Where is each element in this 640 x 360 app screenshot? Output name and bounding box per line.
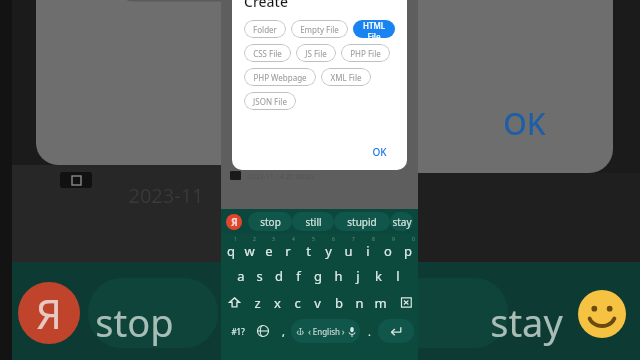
button[interactable]: HTML File (353, 20, 395, 38)
staticText: 9 (392, 236, 395, 243)
button[interactable]: j (348, 262, 368, 289)
button[interactable]: Shift (221, 289, 247, 316)
button[interactable]: still (292, 212, 334, 231)
staticText: a (237, 267, 245, 285)
staticText: d (275, 267, 283, 285)
button[interactable]: Backspace (391, 289, 418, 316)
staticText: 7 (352, 236, 355, 243)
button[interactable]: JS File (296, 44, 336, 62)
staticText: Create (244, 0, 288, 11)
staticText: HTML File (362, 20, 386, 38)
button[interactable]: x (267, 289, 287, 316)
staticText: 0 (412, 236, 415, 243)
staticText: XML File (330, 72, 362, 83)
button[interactable]: l (388, 262, 408, 289)
staticText: Я (231, 215, 238, 229)
button[interactable]: s (250, 262, 269, 289)
button[interactable]: OK (364, 140, 395, 164)
staticText: OK (503, 103, 546, 144)
staticText: ‹I› ‹ English › (296, 326, 345, 337)
button[interactable]: JSON File (244, 92, 296, 110)
button[interactable]: 1 (221, 236, 240, 262)
staticText: i (366, 242, 370, 260)
staticText: u (344, 242, 353, 260)
staticText: o (384, 242, 392, 260)
staticText: n (355, 294, 364, 312)
button[interactable]: 5 (298, 236, 318, 262)
staticText: e (265, 242, 273, 260)
staticText: 2023-11 (128, 182, 204, 209)
staticText: JS File (305, 48, 327, 59)
button[interactable]: PHP File (341, 44, 390, 62)
button[interactable]: stop (248, 212, 292, 231)
button[interactable]: m (370, 289, 391, 316)
button[interactable]: 7 (338, 236, 358, 262)
button[interactable]: a (231, 262, 250, 289)
button[interactable]: f (288, 262, 308, 289)
staticText: b (335, 294, 343, 312)
staticText: p (404, 242, 412, 260)
button[interactable]: Yandex assistant (226, 214, 242, 230)
button[interactable]: stupid (334, 212, 390, 231)
staticText: x (274, 294, 281, 312)
button[interactable]: , (275, 319, 291, 343)
button[interactable]: Change language (251, 319, 275, 343)
staticText: k (375, 267, 382, 285)
button[interactable]: . (360, 319, 378, 343)
button[interactable]: k (368, 262, 388, 289)
staticText: f (296, 267, 301, 285)
staticText: Я (36, 286, 62, 340)
button[interactable]: 2 (240, 236, 259, 262)
staticText: stay (490, 296, 563, 348)
button[interactable]: CSS File (244, 44, 291, 62)
button[interactable]: 4 (278, 236, 298, 262)
staticText: s (256, 267, 263, 285)
button[interactable]: 0 (398, 236, 418, 262)
staticText: v (314, 294, 321, 312)
button[interactable]: Empty File (291, 20, 348, 38)
button[interactable]: XML File (321, 68, 371, 86)
button[interactable]: 3 (259, 236, 278, 262)
button[interactable]: 9 (378, 236, 398, 262)
staticText: t (306, 242, 311, 260)
button[interactable]: z (247, 289, 267, 316)
button[interactable]: b (328, 289, 349, 316)
button[interactable]: d (269, 262, 288, 289)
button[interactable]: n (349, 289, 370, 316)
button[interactable]: PHP Webpage (244, 68, 316, 86)
staticText: Folder (253, 24, 277, 35)
staticText: 1 (234, 236, 237, 243)
staticText: stop (95, 296, 174, 348)
staticText: PHP Webpage (253, 72, 307, 83)
button[interactable]: ‹I› ‹ English › (291, 319, 360, 343)
button[interactable]: #1? (225, 319, 251, 343)
staticText: c (294, 294, 301, 312)
staticText: PHP File (350, 48, 381, 59)
staticText: g (314, 267, 322, 285)
staticText: stupid (347, 215, 377, 229)
staticText: . (368, 324, 371, 339)
button[interactable]: Enter (378, 319, 414, 343)
staticText: z (254, 294, 261, 312)
staticText: l (396, 267, 400, 285)
button[interactable]: g (308, 262, 328, 289)
staticText: y (325, 242, 332, 260)
button[interactable]: Folder (244, 20, 286, 38)
staticText: stop (260, 215, 281, 229)
staticText: #1? (231, 326, 245, 337)
staticText: 8 (372, 236, 375, 243)
button[interactable]: c (287, 289, 307, 316)
button[interactable]: h (328, 262, 348, 289)
button[interactable]: 6 (318, 236, 338, 262)
button[interactable]: stay (390, 212, 413, 231)
staticText: Empty File (300, 24, 339, 35)
staticText: , (282, 324, 285, 339)
staticText: m (374, 294, 387, 312)
staticText: stay (392, 215, 412, 229)
staticText: still (305, 215, 322, 229)
button[interactable]: v (307, 289, 328, 316)
button[interactable]: 8 (358, 236, 378, 262)
staticText: 4 (292, 236, 295, 243)
staticText: j (356, 267, 360, 285)
staticText: 6 (332, 236, 335, 243)
